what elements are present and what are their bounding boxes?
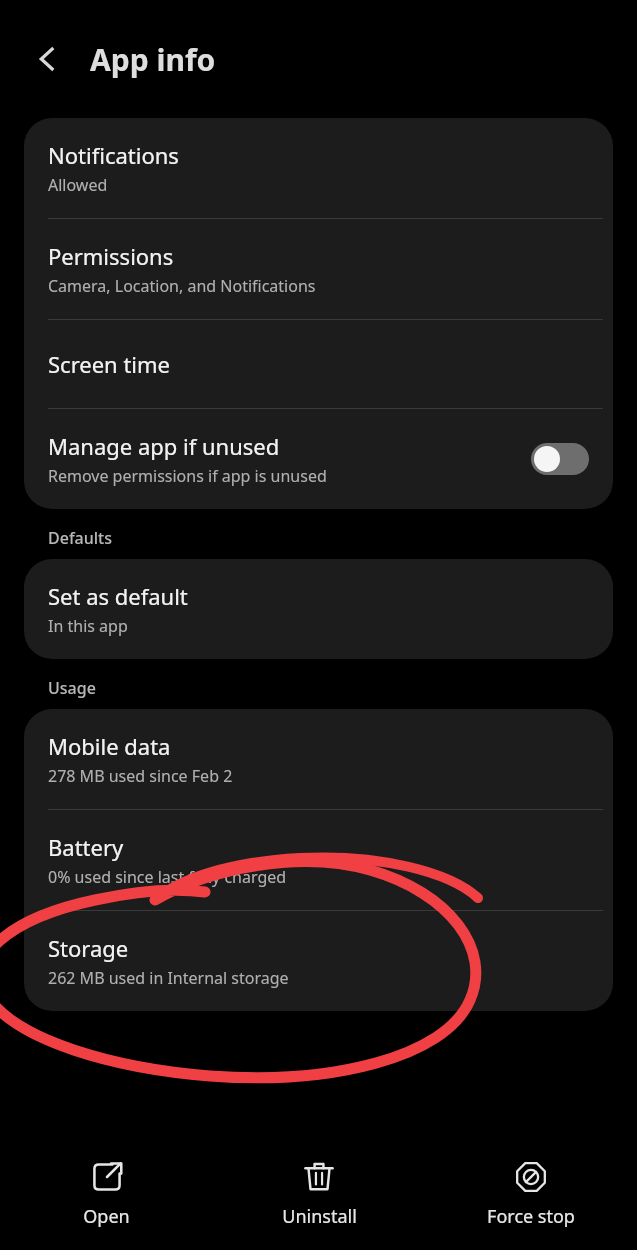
staticText: 262 MB used in Internal storage bbox=[48, 967, 289, 989]
staticText: Battery bbox=[48, 832, 124, 862]
staticText: Uninstall bbox=[282, 1204, 357, 1229]
button[interactable]: Force stop bbox=[425, 1138, 637, 1250]
button[interactable]: Battery bbox=[24, 810, 613, 910]
staticText: Force stop bbox=[487, 1204, 575, 1229]
staticText: Manage app if unused bbox=[48, 431, 280, 461]
button[interactable]: Open bbox=[0, 1138, 213, 1250]
button[interactable]: Permissions bbox=[24, 219, 613, 319]
button[interactable]: Manage app if unused bbox=[24, 409, 613, 509]
staticText: Set as default bbox=[48, 581, 188, 611]
button[interactable]: Back bbox=[22, 33, 74, 85]
staticText: Allowed bbox=[48, 174, 108, 196]
button[interactable]: Set as default bbox=[24, 559, 613, 659]
staticText: Notifications bbox=[48, 140, 179, 170]
staticText: Camera, Location, and Notifications bbox=[48, 275, 316, 297]
button[interactable]: Mobile data bbox=[24, 709, 613, 809]
staticText: Mobile data bbox=[48, 731, 171, 761]
staticText: Storage bbox=[48, 933, 129, 963]
button[interactable]: Screen time bbox=[24, 320, 613, 408]
staticText: Defaults bbox=[48, 527, 113, 549]
staticText: Permissions bbox=[48, 241, 174, 271]
staticText: App info bbox=[90, 39, 216, 80]
staticText: 0% used since last fully charged bbox=[48, 866, 287, 888]
staticText: Usage bbox=[48, 677, 96, 699]
button[interactable]: Manage app if unused toggle bbox=[531, 443, 589, 475]
staticText: Remove permissions if app is unused bbox=[48, 465, 327, 487]
staticText: Open bbox=[83, 1204, 130, 1229]
staticText: Screen time bbox=[48, 349, 171, 379]
button[interactable]: Storage bbox=[24, 911, 613, 1011]
button[interactable]: Notifications bbox=[24, 118, 613, 218]
staticText: 278 MB used since Feb 2 bbox=[48, 765, 233, 787]
button[interactable]: Uninstall bbox=[213, 1138, 425, 1250]
staticText: In this app bbox=[48, 615, 128, 637]
